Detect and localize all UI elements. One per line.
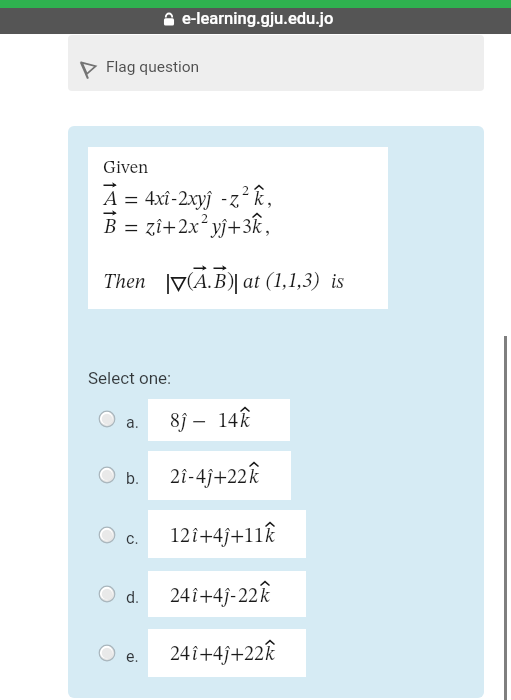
staticText: z xyxy=(230,190,239,210)
staticText: A xyxy=(194,273,208,293)
staticText: 14 xyxy=(218,412,238,432)
staticText: 4 xyxy=(213,645,223,665)
staticText: î xyxy=(156,218,162,238)
staticText: 12 xyxy=(170,527,190,547)
staticText: 2 xyxy=(242,184,249,198)
staticText: ) xyxy=(227,272,234,292)
staticText: (1,1,3) xyxy=(266,272,319,292)
staticText: 2 xyxy=(178,218,188,238)
staticText: B xyxy=(104,218,116,238)
staticText: B xyxy=(214,273,226,293)
staticText: . xyxy=(207,273,212,293)
staticText: x xyxy=(188,190,198,210)
staticText: k xyxy=(265,527,275,547)
staticText: k xyxy=(252,218,262,238)
staticText: 2 xyxy=(201,212,208,226)
button[interactable] xyxy=(148,399,290,441)
staticText: , xyxy=(265,218,270,238)
staticText: 3 xyxy=(242,218,252,238)
staticText: Then xyxy=(103,273,146,293)
staticText: b. xyxy=(126,469,140,488)
staticText: 2 xyxy=(170,468,180,488)
staticText: k xyxy=(265,645,275,665)
button[interactable] xyxy=(148,510,306,558)
button[interactable]: Select answer xyxy=(98,526,116,544)
button[interactable] xyxy=(148,451,291,500)
staticText: x xyxy=(155,190,165,210)
staticText: 24 xyxy=(170,587,190,607)
staticText: is xyxy=(331,273,344,293)
button[interactable]: Select answer xyxy=(98,410,116,428)
staticText: ĵ xyxy=(206,190,212,210)
staticText: − xyxy=(192,412,207,432)
staticText: 4 xyxy=(196,468,206,488)
staticText: Flag question xyxy=(106,58,200,76)
staticText: î xyxy=(192,587,198,607)
staticText: , xyxy=(267,190,272,210)
staticText: k xyxy=(240,412,250,432)
staticText: + xyxy=(230,645,245,665)
staticText: y xyxy=(197,190,206,210)
staticText: ĵ xyxy=(224,527,230,547)
staticText: + xyxy=(199,527,214,547)
staticText: 4 xyxy=(213,527,223,547)
staticText: 2 xyxy=(178,190,188,210)
button[interactable] xyxy=(148,571,306,617)
button[interactable]: Select answer xyxy=(98,466,116,484)
staticText: î xyxy=(192,527,198,547)
staticText: = xyxy=(124,190,139,210)
staticText: î xyxy=(192,645,198,665)
staticText: ĵ xyxy=(181,412,187,432)
staticText: + xyxy=(199,645,214,665)
staticText: - xyxy=(188,468,195,488)
staticText: = xyxy=(124,218,139,238)
staticText: Select one: xyxy=(88,368,172,388)
staticText: 4 xyxy=(145,190,155,210)
staticText: ( xyxy=(187,272,194,292)
staticText: A xyxy=(104,190,118,210)
staticText: - xyxy=(230,587,237,607)
button[interactable] xyxy=(148,629,306,677)
staticText: 8 xyxy=(170,412,180,432)
staticText: 11 xyxy=(244,527,264,547)
staticText: x xyxy=(189,218,199,238)
staticText: î xyxy=(181,468,187,488)
staticText: e. xyxy=(126,647,139,666)
staticText: at xyxy=(243,273,260,293)
staticText: 24 xyxy=(170,645,190,665)
staticText: k xyxy=(254,190,264,210)
staticText: + xyxy=(162,218,177,238)
staticText: d. xyxy=(126,588,140,607)
staticText: k xyxy=(249,468,259,488)
staticText: 22 xyxy=(244,645,264,665)
staticText: + xyxy=(230,527,245,547)
staticText: + xyxy=(227,218,242,238)
staticText: ĵ xyxy=(224,587,230,607)
staticText: k xyxy=(260,587,270,607)
other: Secure connection xyxy=(163,12,175,27)
staticText: 22 xyxy=(238,587,258,607)
staticText: - xyxy=(221,190,228,210)
staticText: c. xyxy=(126,529,139,548)
staticText: ĵ xyxy=(221,218,227,238)
staticText: 22 xyxy=(227,468,247,488)
staticText: - xyxy=(171,190,178,210)
button[interactable]: Select answer xyxy=(98,644,116,662)
staticText: y xyxy=(212,218,221,238)
button[interactable]: Flag question xyxy=(68,35,484,91)
staticText: î xyxy=(164,190,170,210)
button[interactable]: Select answer xyxy=(98,585,116,603)
staticText: + xyxy=(199,587,214,607)
staticText: e-learning.gju.edu.jo xyxy=(182,9,334,28)
staticText: ĵ xyxy=(207,468,213,488)
staticText: + xyxy=(213,468,228,488)
staticText: 4 xyxy=(213,587,223,607)
staticText: ĵ xyxy=(224,645,230,665)
staticText: a. xyxy=(126,413,139,432)
staticText: z xyxy=(146,218,155,238)
staticText: Given xyxy=(103,159,149,177)
other: Flag question xyxy=(80,61,96,79)
